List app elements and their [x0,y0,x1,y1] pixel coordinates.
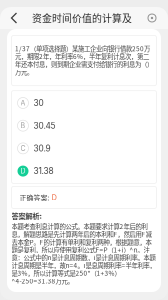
button[interactable]: Back [0,7,22,29]
button[interactable]: A [17,92,150,114]
staticText: 31.38 [33,166,53,176]
staticText: 1/37（单项选择题）某施工企业向银行借款250万元，期限2年，年利率6%，半年… [15,44,153,76]
staticText: A [20,99,25,107]
staticText: 答案解析: [11,210,41,221]
staticText: D [51,193,56,202]
button[interactable]: C [17,137,150,160]
staticText: 本题考查利息计算的公式。本题要求计算2年后的利息，解题思路是先计算两年后的本利和… [11,222,155,285]
staticText: 30.45 [33,121,55,131]
button[interactable]: B [17,114,150,137]
staticText: C [20,144,25,153]
staticText: D [20,167,25,175]
staticText: 30.9 [33,143,50,153]
staticText: 资金时间价值的计算及 [32,11,132,25]
staticText: B [20,121,25,130]
button[interactable]: D [17,160,150,182]
staticText: 30 [33,98,43,108]
staticText: 正确答案: [19,192,49,202]
button[interactable]: Settings [142,7,168,29]
